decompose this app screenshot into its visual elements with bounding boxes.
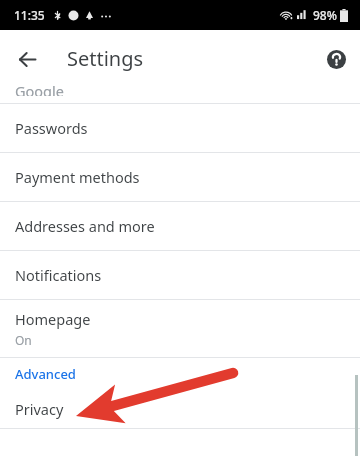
button[interactable]: Advanced	[0, 358, 360, 390]
staticText: 11:35	[14, 7, 45, 23]
button[interactable]: Help	[317, 40, 355, 78]
staticText: Settings	[67, 45, 144, 72]
staticText: Privacy	[15, 399, 64, 419]
staticText: Google	[15, 81, 64, 96]
button[interactable]: Addresses and more	[0, 202, 360, 250]
button[interactable]: Notifications	[0, 251, 360, 299]
button[interactable]: Google	[0, 88, 360, 103]
staticText: 98%	[313, 7, 337, 23]
staticText: Advanced	[15, 365, 76, 383]
staticText: Passwords	[15, 118, 88, 138]
staticText: Notifications	[15, 265, 102, 285]
staticText: Payment methods	[15, 167, 140, 187]
button[interactable]: Passwords	[0, 104, 360, 152]
staticText: On	[15, 332, 32, 348]
button[interactable]: Payment methods	[0, 153, 360, 201]
staticText: Addresses and more	[15, 216, 155, 236]
button[interactable]: Homepage	[0, 300, 360, 357]
staticText: Homepage	[15, 309, 91, 329]
button[interactable]: Back	[8, 40, 46, 78]
button[interactable]: Privacy	[0, 390, 360, 428]
